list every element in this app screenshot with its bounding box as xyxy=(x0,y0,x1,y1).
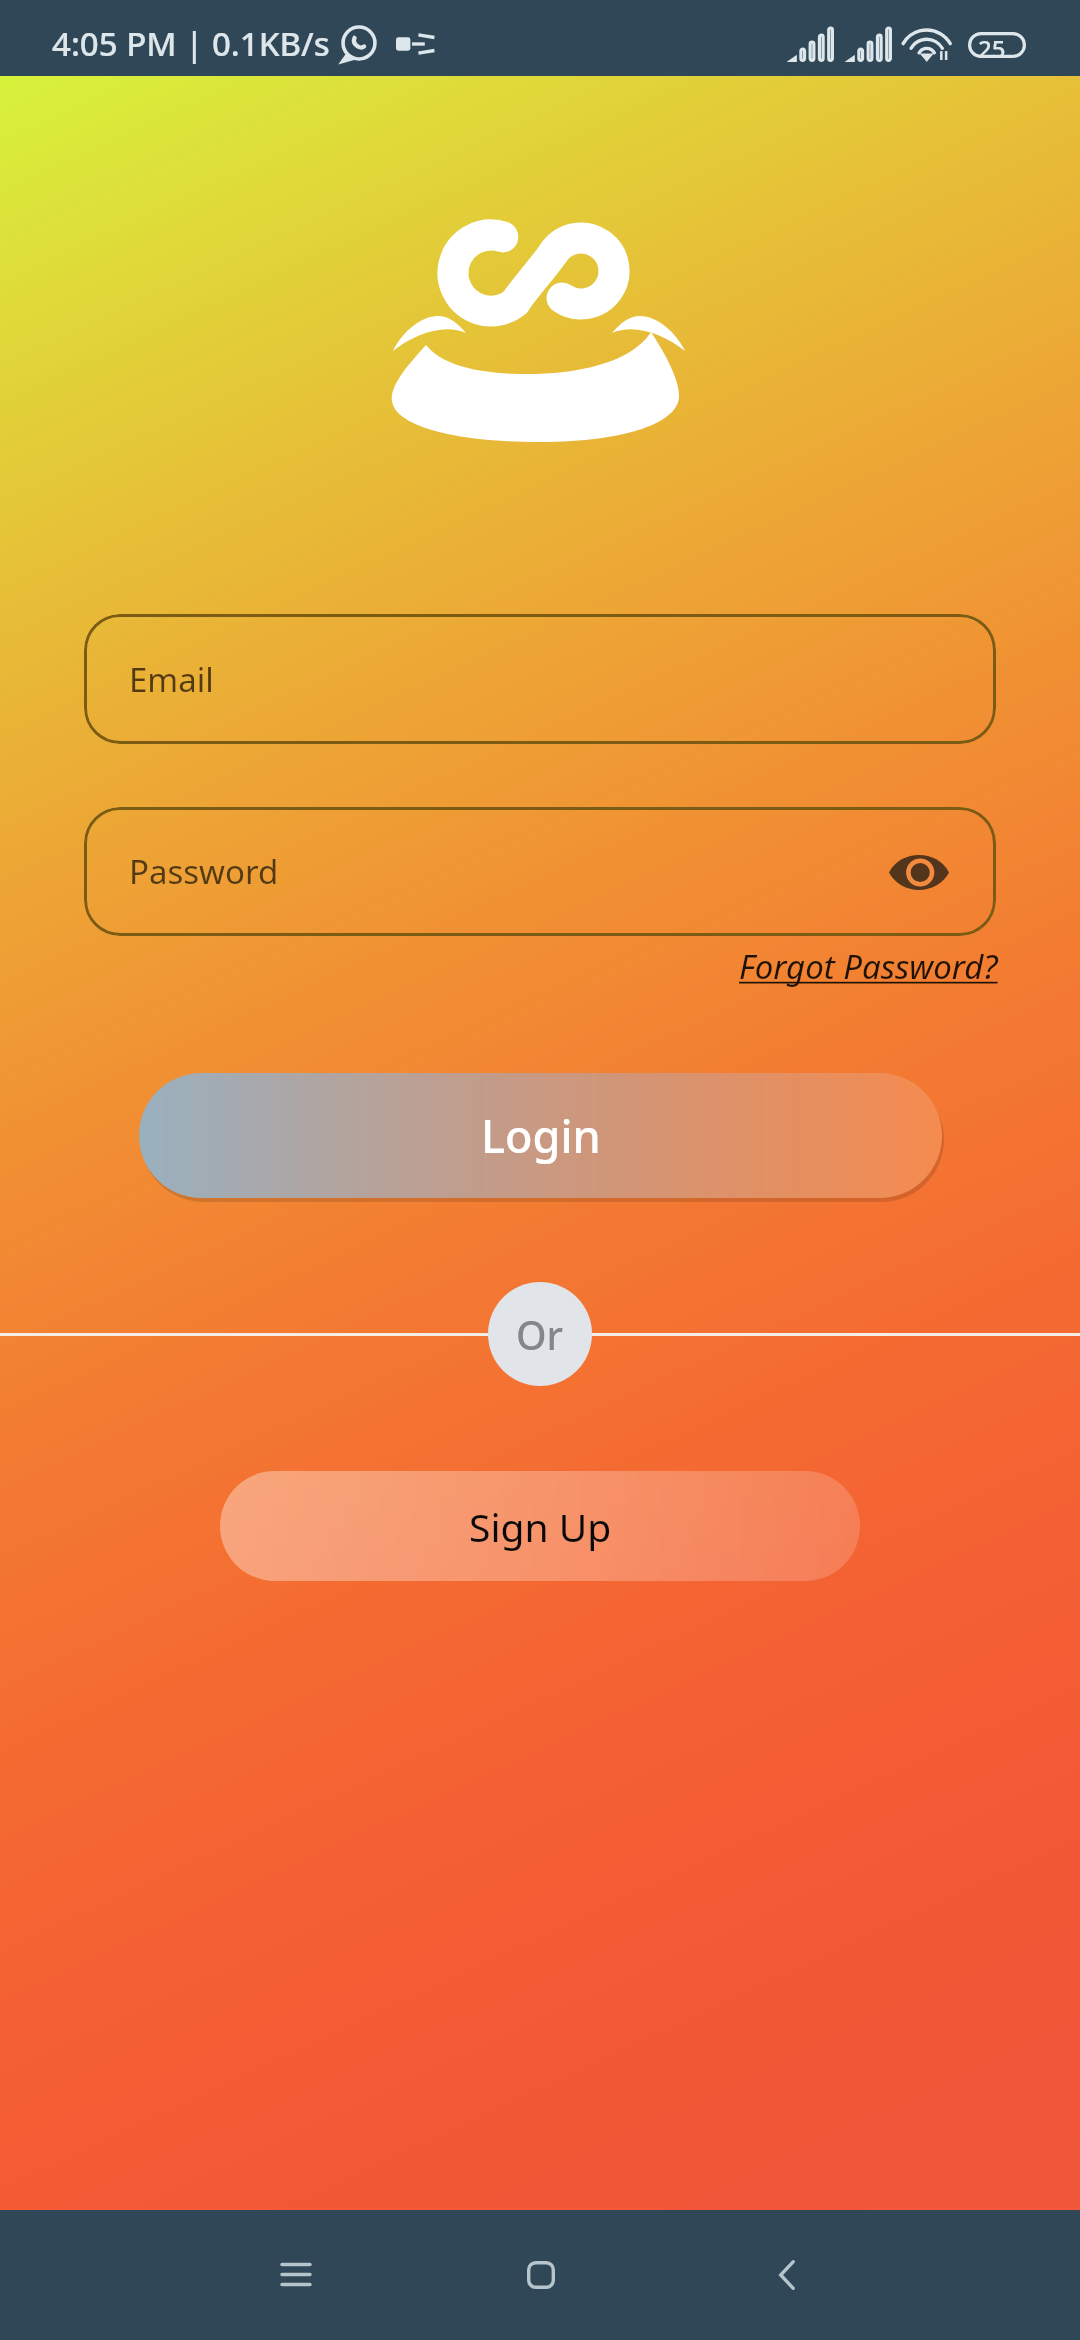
button[interactable]: Back xyxy=(732,2220,842,2330)
button[interactable]: Password xyxy=(84,807,996,936)
button[interactable]: Home xyxy=(486,2220,596,2330)
button[interactable]: Recent apps xyxy=(241,2219,351,2329)
staticText: Or xyxy=(516,1308,564,1361)
staticText: Email xyxy=(129,657,214,702)
button[interactable]: Email xyxy=(84,614,996,744)
staticText: Login xyxy=(481,1105,601,1166)
button[interactable]: Sign Up xyxy=(220,1471,860,1581)
button[interactable]: Show password xyxy=(884,837,954,907)
staticText: Password xyxy=(129,849,279,894)
button[interactable]: Or xyxy=(488,1282,592,1386)
button[interactable]: Forgot Password? xyxy=(739,944,998,989)
staticText: 25 xyxy=(978,32,1006,58)
staticText: 4:05 PM | 0.1KB/s xyxy=(52,21,330,66)
staticText: Sign Up xyxy=(469,1500,612,1553)
button[interactable]: Login xyxy=(139,1073,942,1198)
